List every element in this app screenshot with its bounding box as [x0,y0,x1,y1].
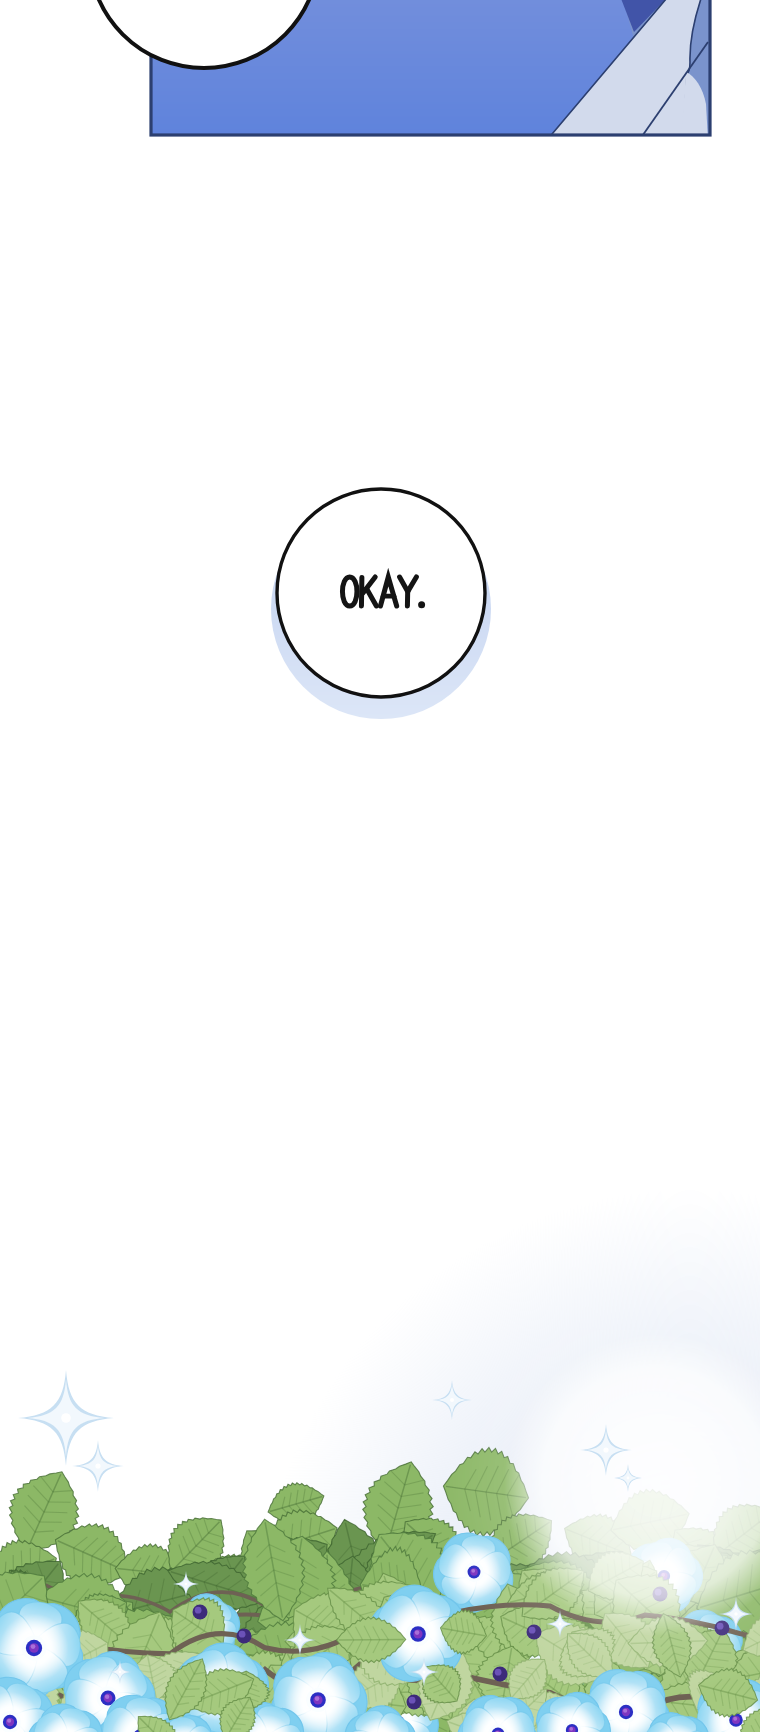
button[interactable]: Comic panel [151,0,710,137]
staticText: OKAY. [380,593,383,594]
button[interactable]: OKAY. [277,489,485,697]
button[interactable]: Floral illustration [0,1392,760,1732]
